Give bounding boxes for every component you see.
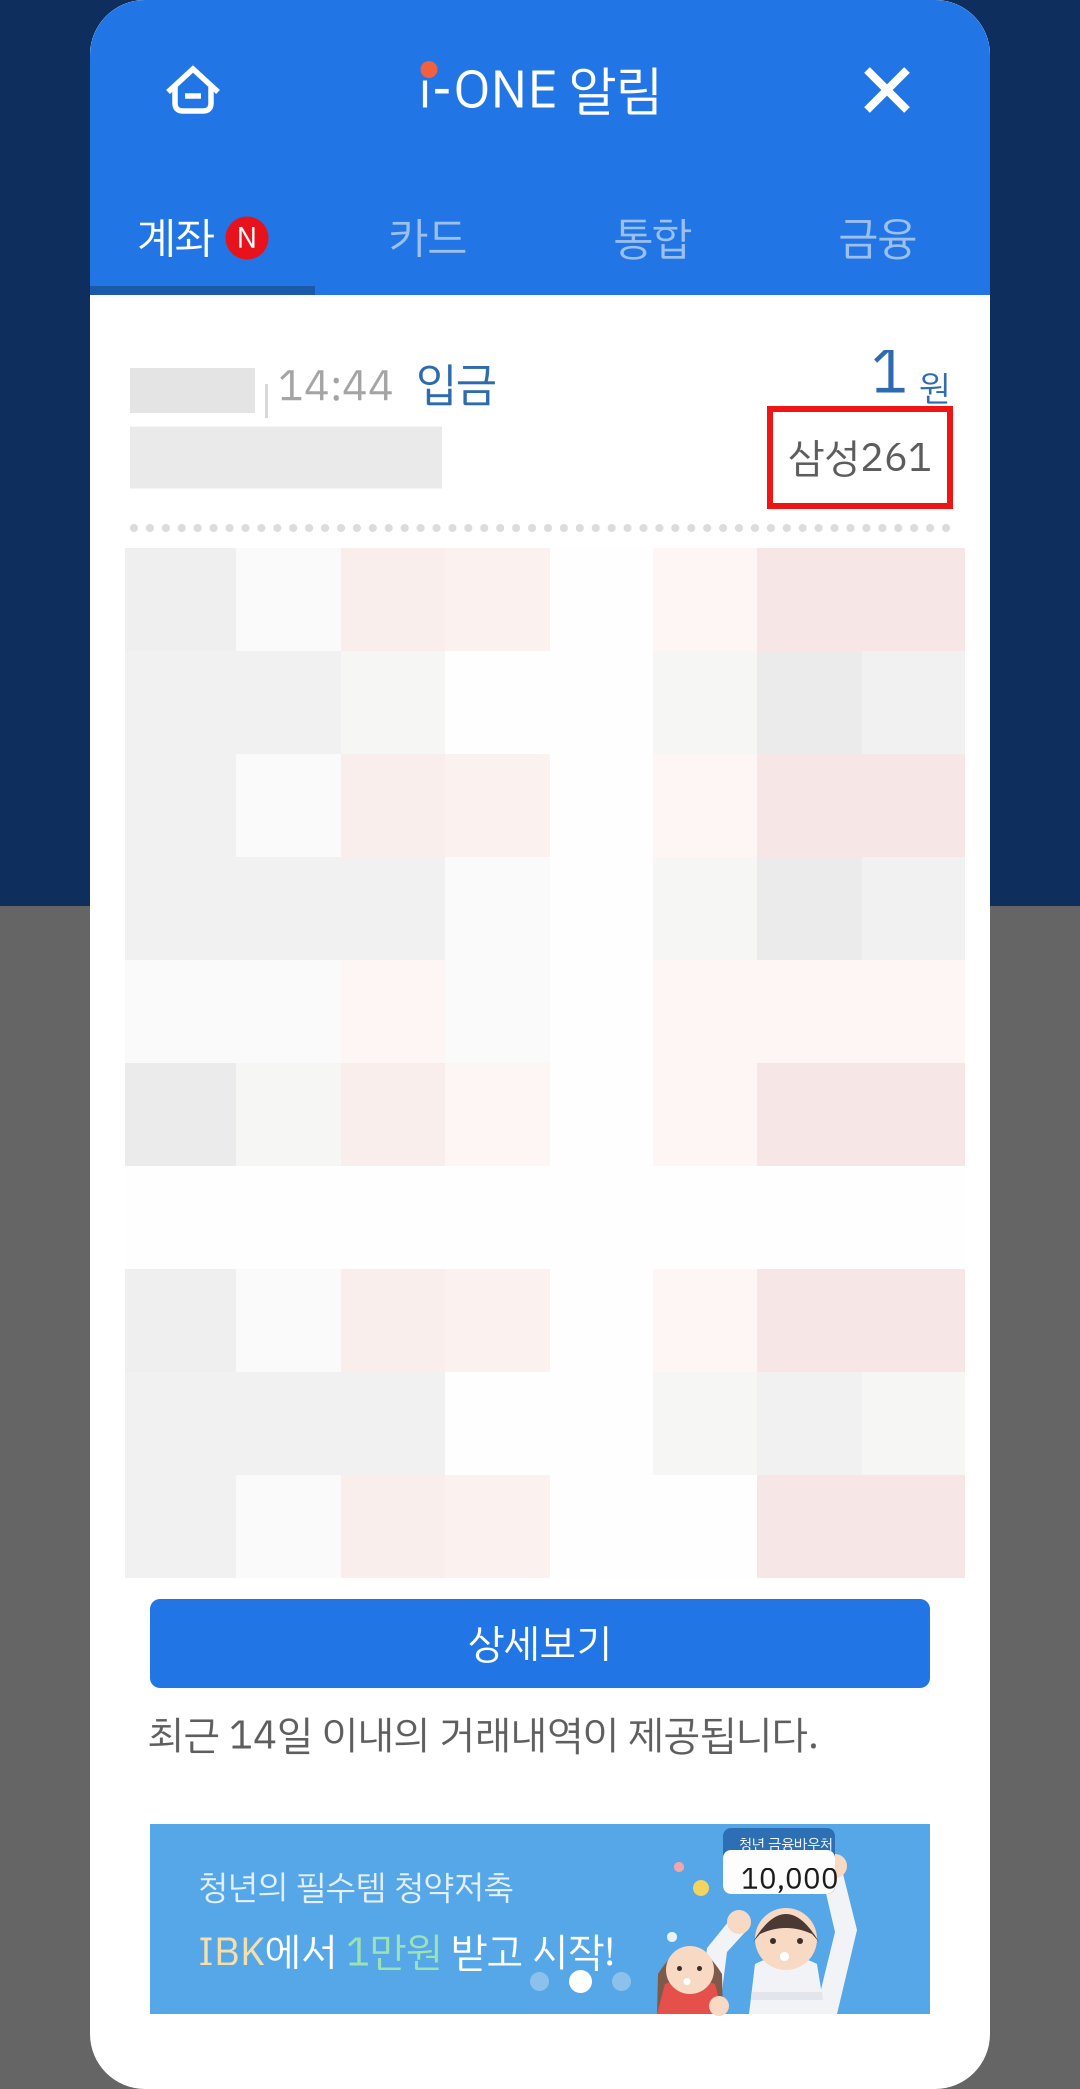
staticText: 받고 시작! — [442, 1922, 615, 1982]
staticText: 14:44 — [278, 354, 394, 418]
button[interactable]: Home — [137, 20, 249, 160]
staticText: 1 — [871, 326, 908, 418]
staticText: 삼성261 — [788, 427, 932, 487]
staticText: IBK — [198, 1922, 265, 1982]
staticText: i-ONE 알림 — [418, 51, 661, 129]
button[interactable]: 통합 — [540, 190, 765, 295]
button[interactable]: Close — [831, 20, 943, 160]
staticText: 청년의 필수템 청약저축 — [198, 1862, 514, 1912]
staticText: 에서 — [265, 1922, 346, 1982]
button[interactable]: 청년 금융바우처 — [150, 1824, 930, 2014]
staticText: 상세보기 — [468, 1613, 612, 1673]
button[interactable]: 금융 — [765, 190, 990, 295]
staticText: 최근 14일 이내의 거래내역이 제공됩니다. — [148, 1705, 819, 1765]
button[interactable]: 계좌 — [90, 190, 315, 295]
staticText: 청년 금융바우처 — [739, 1833, 833, 1855]
staticText: 금융 — [838, 205, 916, 271]
staticText: 입금 — [416, 350, 496, 418]
button[interactable]: 카드 — [315, 190, 540, 295]
staticText: 10,000 — [741, 1857, 839, 1901]
staticText: 통합 — [613, 205, 691, 271]
button[interactable]: 상세보기 — [150, 1599, 930, 1688]
staticText: 원 — [919, 362, 950, 414]
staticText: 계좌 — [136, 205, 214, 271]
staticText: N — [236, 216, 257, 260]
staticText: 1만원 — [346, 1922, 442, 1982]
staticText: 카드 — [388, 205, 466, 271]
